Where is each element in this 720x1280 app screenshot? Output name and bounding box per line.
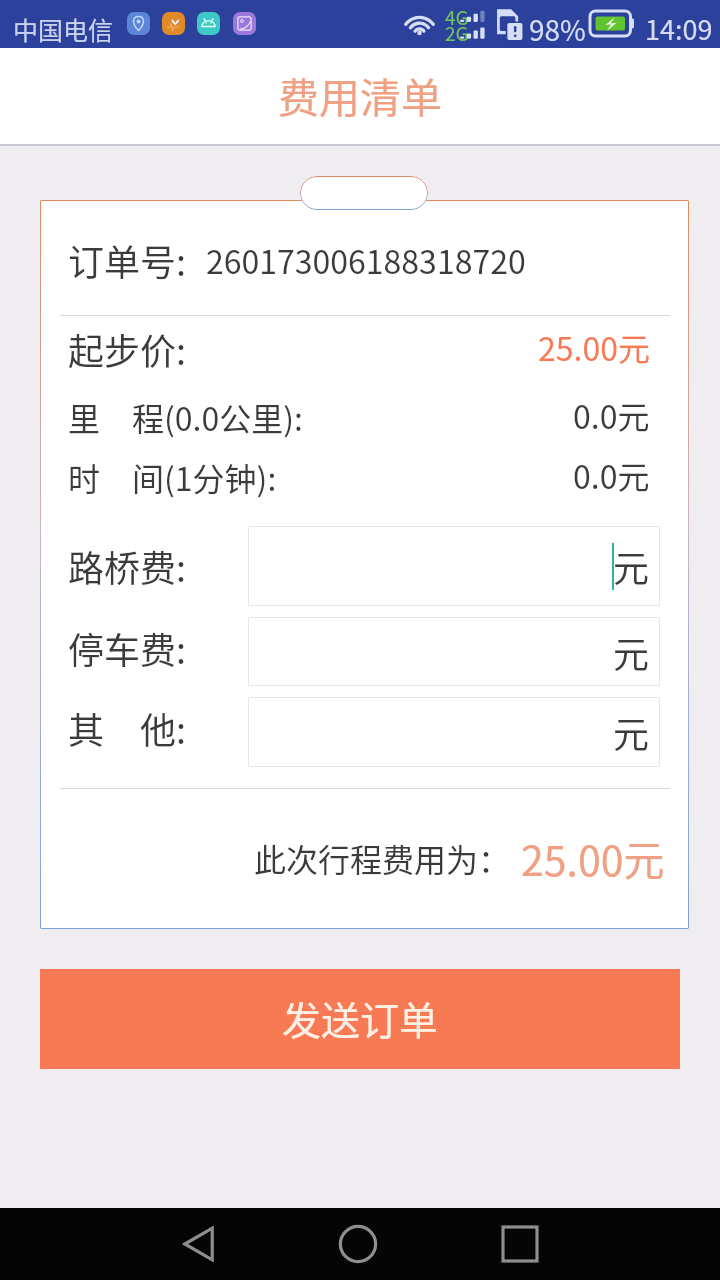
button[interactable]: 发送订单 (40, 969, 680, 1069)
staticText: 停车费: (68, 622, 187, 674)
staticText: 4G (445, 3, 469, 31)
button[interactable]: 元 (248, 697, 660, 767)
staticText: 里 程(0.0公里): (68, 394, 303, 440)
staticText: 2G (445, 19, 469, 47)
staticText: 起步价: (68, 323, 187, 375)
staticText: 0.0元 (573, 452, 650, 498)
staticText: 中国电信 (13, 11, 114, 47)
staticText: 元 (613, 626, 650, 678)
button[interactable]: Recent apps (484, 1208, 556, 1280)
staticText: 费用清单 (278, 65, 442, 124)
staticText: 98% (529, 9, 586, 50)
staticText: 25.00元 (538, 324, 650, 370)
staticText: 订单号: (68, 234, 187, 286)
button[interactable]: 元 (248, 617, 660, 686)
staticText: 此次行程费用为： (254, 835, 511, 881)
staticText: 发送订单 (282, 990, 439, 1046)
staticText: 路桥费: (68, 540, 187, 592)
staticText: 260173006188318720 (206, 237, 526, 283)
button[interactable]: Back (164, 1208, 236, 1280)
staticText: 时 间(1分钟): (68, 454, 277, 500)
staticText: 25.00元 (521, 828, 665, 887)
staticText: 元 (613, 540, 650, 592)
staticText: 元 (613, 706, 650, 758)
button[interactable]: 元 (248, 526, 660, 606)
button[interactable]: Home (322, 1208, 394, 1280)
staticText: 其 他: (68, 702, 187, 754)
staticText: 0.0元 (573, 392, 650, 438)
staticText: 14:09 (645, 9, 713, 48)
